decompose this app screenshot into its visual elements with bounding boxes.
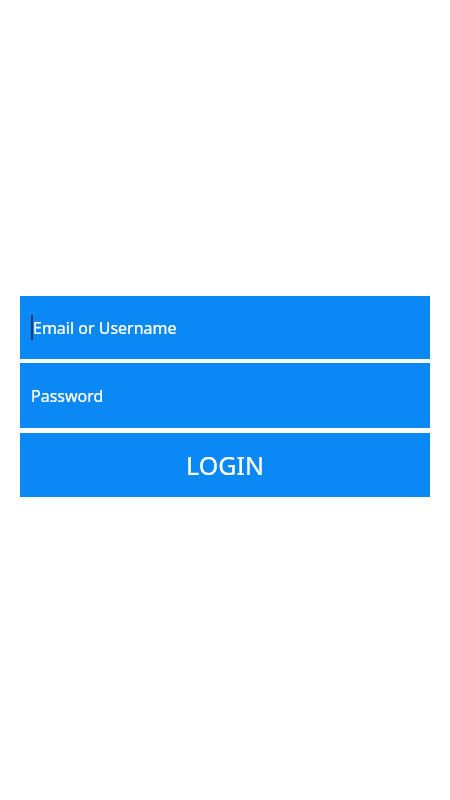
button[interactable]: LOGIN (20, 433, 430, 497)
button[interactable]: Password (20, 363, 430, 428)
staticText: Password (31, 385, 104, 407)
staticText: Email or Username (33, 317, 177, 339)
staticText: LOGIN (186, 448, 264, 482)
button[interactable]: Email or Username (20, 296, 430, 359)
